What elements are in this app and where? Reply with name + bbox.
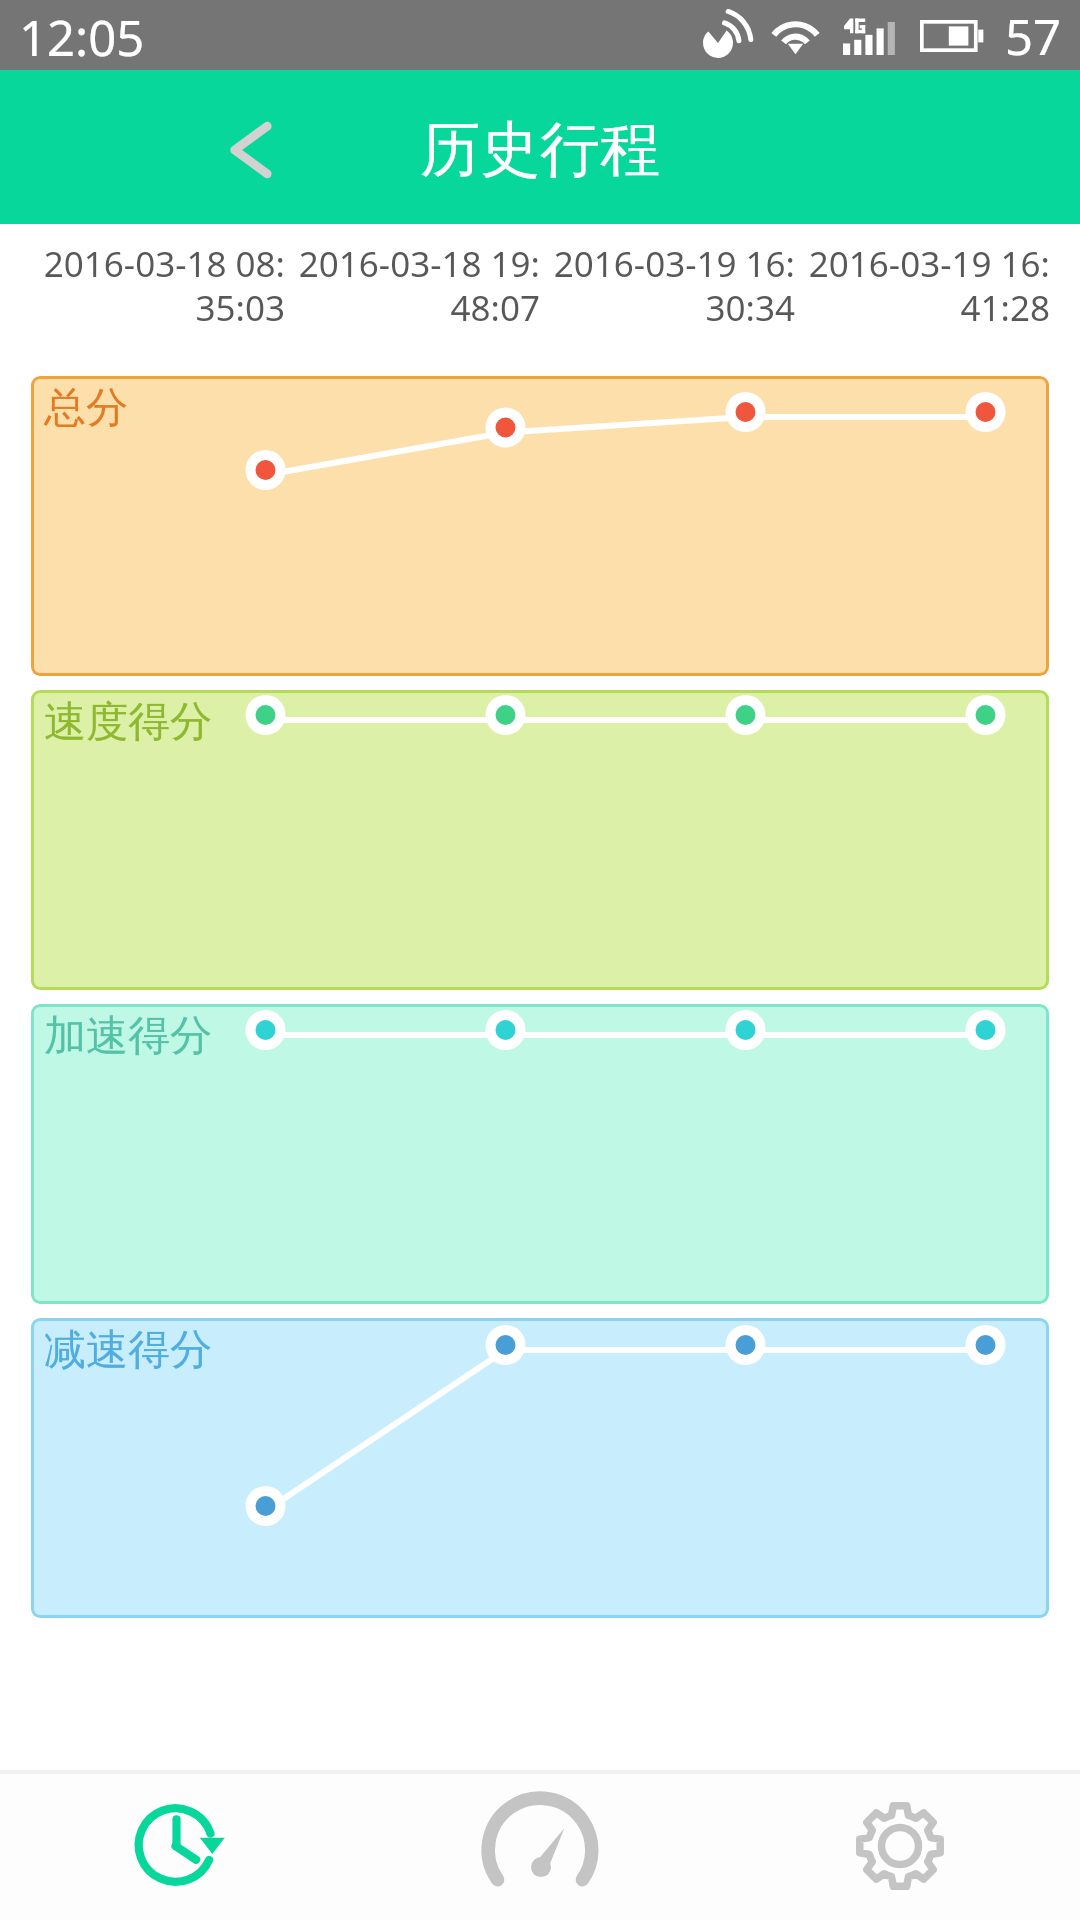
button[interactable]: 加速得分	[31, 1004, 1049, 1304]
button[interactable]: 总分	[31, 376, 1049, 676]
button[interactable]: Settings	[720, 1774, 1080, 1920]
button[interactable]: Speed	[360, 1774, 720, 1920]
staticText: 历史行程	[420, 112, 660, 188]
button[interactable]: Back	[212, 110, 292, 190]
staticText: 减速得分	[44, 1324, 212, 1377]
button[interactable]: History	[0, 1774, 360, 1920]
staticText: 57	[1005, 3, 1062, 70]
staticText: 总分	[44, 382, 128, 435]
staticText: 2016-03-18 19: 48:07	[298, 240, 540, 331]
staticText: 12:05	[19, 4, 145, 71]
staticText: 2016-03-19 16: 30:34	[553, 240, 795, 331]
staticText: 2016-03-18 08: 35:03	[43, 240, 285, 331]
staticText: 速度得分	[44, 696, 212, 749]
staticText: 2016-03-19 16: 41:28	[808, 240, 1050, 331]
staticText: 加速得分	[44, 1010, 212, 1063]
button[interactable]: 减速得分	[31, 1318, 1049, 1618]
button[interactable]: 速度得分	[31, 690, 1049, 990]
